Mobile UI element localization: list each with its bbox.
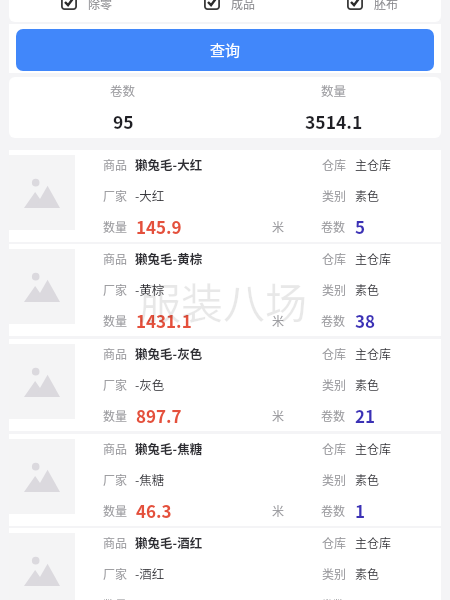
staticText: 仓库 (322, 156, 347, 173)
staticText: 主仓库 (355, 534, 392, 551)
staticText: 数量 (103, 596, 128, 600)
staticText: 厂家 (103, 471, 128, 488)
button[interactable]: 商品 (9, 244, 441, 336)
staticText: 46.3 (136, 498, 172, 523)
staticText: 21 (355, 403, 376, 428)
staticText: 卷数 (321, 596, 346, 600)
staticText: 1 (355, 498, 366, 523)
staticText: 数量 (103, 407, 128, 424)
staticText: 米 (272, 407, 285, 424)
staticText: 数量 (103, 312, 128, 329)
staticText: -灰色 (135, 375, 165, 393)
button[interactable]: 商品 (9, 434, 441, 526)
staticText: 查询 (210, 39, 241, 61)
staticText: 商品 (103, 156, 128, 173)
staticText: 商品 (103, 250, 128, 267)
staticText: 3514.1 (305, 109, 363, 134)
staticText: 除零 (88, 0, 113, 12)
staticText: 厂家 (103, 187, 128, 204)
staticText: 主仓库 (355, 440, 392, 457)
staticText: 米 (272, 502, 285, 519)
staticText: 商品 (103, 345, 128, 362)
staticText: 獭兔毛-灰色 (135, 344, 203, 362)
staticText: 类别 (322, 281, 347, 298)
staticText: 素色 (355, 565, 380, 582)
staticText: 仓库 (322, 345, 347, 362)
button[interactable]: 成品 (196, 0, 316, 26)
button[interactable]: 胚布 (339, 0, 450, 26)
button[interactable]: 商品 (9, 150, 441, 242)
staticText: 商品 (103, 440, 128, 457)
staticText: 类别 (322, 565, 347, 582)
staticText: 卷数 (321, 312, 346, 329)
staticText: 38 (355, 308, 376, 333)
staticText: 獭兔毛-酒红 (135, 533, 203, 551)
staticText: -大红 (135, 186, 165, 204)
staticText: 897.7 (136, 403, 182, 428)
staticText: 素色 (355, 281, 380, 298)
staticText: 厂家 (103, 281, 128, 298)
staticText: 成品 (231, 0, 256, 12)
staticText: 数量 (321, 81, 347, 99)
staticText: 卷数 (321, 407, 346, 424)
staticText: 卷数 (110, 81, 136, 99)
staticText: 卷数 (321, 218, 346, 235)
staticText: 类别 (322, 187, 347, 204)
staticText: 素色 (355, 187, 380, 204)
staticText: 主仓库 (355, 345, 392, 362)
staticText: 95 (113, 109, 134, 134)
button[interactable]: 商品 (9, 339, 441, 431)
staticText: 数量 (103, 502, 128, 519)
staticText: 1431.1 (136, 308, 192, 333)
staticText: 主仓库 (355, 250, 392, 267)
staticText: -焦糖 (135, 470, 165, 488)
staticText: 商品 (103, 534, 128, 551)
staticText: 服装八场 (139, 270, 308, 331)
staticText: 素色 (355, 376, 380, 393)
staticText: 獭兔毛-黄棕 (135, 249, 203, 267)
staticText: -酒红 (135, 564, 165, 582)
staticText: 类别 (322, 471, 347, 488)
staticText: 仓库 (322, 250, 347, 267)
staticText: 厂家 (103, 565, 128, 582)
staticText: 厂家 (103, 376, 128, 393)
button[interactable]: 查询 (16, 29, 434, 71)
button[interactable]: 商品 (9, 528, 441, 600)
staticText: 145.9 (136, 214, 182, 239)
staticText: 卷数 (321, 502, 346, 519)
staticText: 仓库 (322, 534, 347, 551)
staticText: 素色 (355, 471, 380, 488)
staticText: 胚布 (374, 0, 399, 12)
staticText: 仓库 (322, 440, 347, 457)
staticText: 主仓库 (355, 156, 392, 173)
button[interactable]: 除零 (53, 0, 173, 26)
staticText: 数量 (103, 218, 128, 235)
staticText: -黄棕 (135, 280, 165, 298)
staticText: 5 (355, 214, 366, 239)
staticText: 类别 (322, 376, 347, 393)
staticText: 米 (272, 312, 285, 329)
staticText: 米 (272, 218, 285, 235)
staticText: 獭兔毛-大红 (135, 155, 203, 173)
staticText: 獭兔毛-焦糖 (135, 439, 203, 457)
